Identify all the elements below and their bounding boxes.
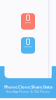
staticText: New Phone <box>24 46 32 47</box>
button[interactable]: New Phone <box>21 37 35 54</box>
staticText: From New Phone To Old Phone <box>6 90 50 94</box>
staticText: Old Phone <box>24 22 31 23</box>
button[interactable]: Old Phone <box>21 13 35 30</box>
staticText: Phone Clone Share Data <box>4 84 52 89</box>
